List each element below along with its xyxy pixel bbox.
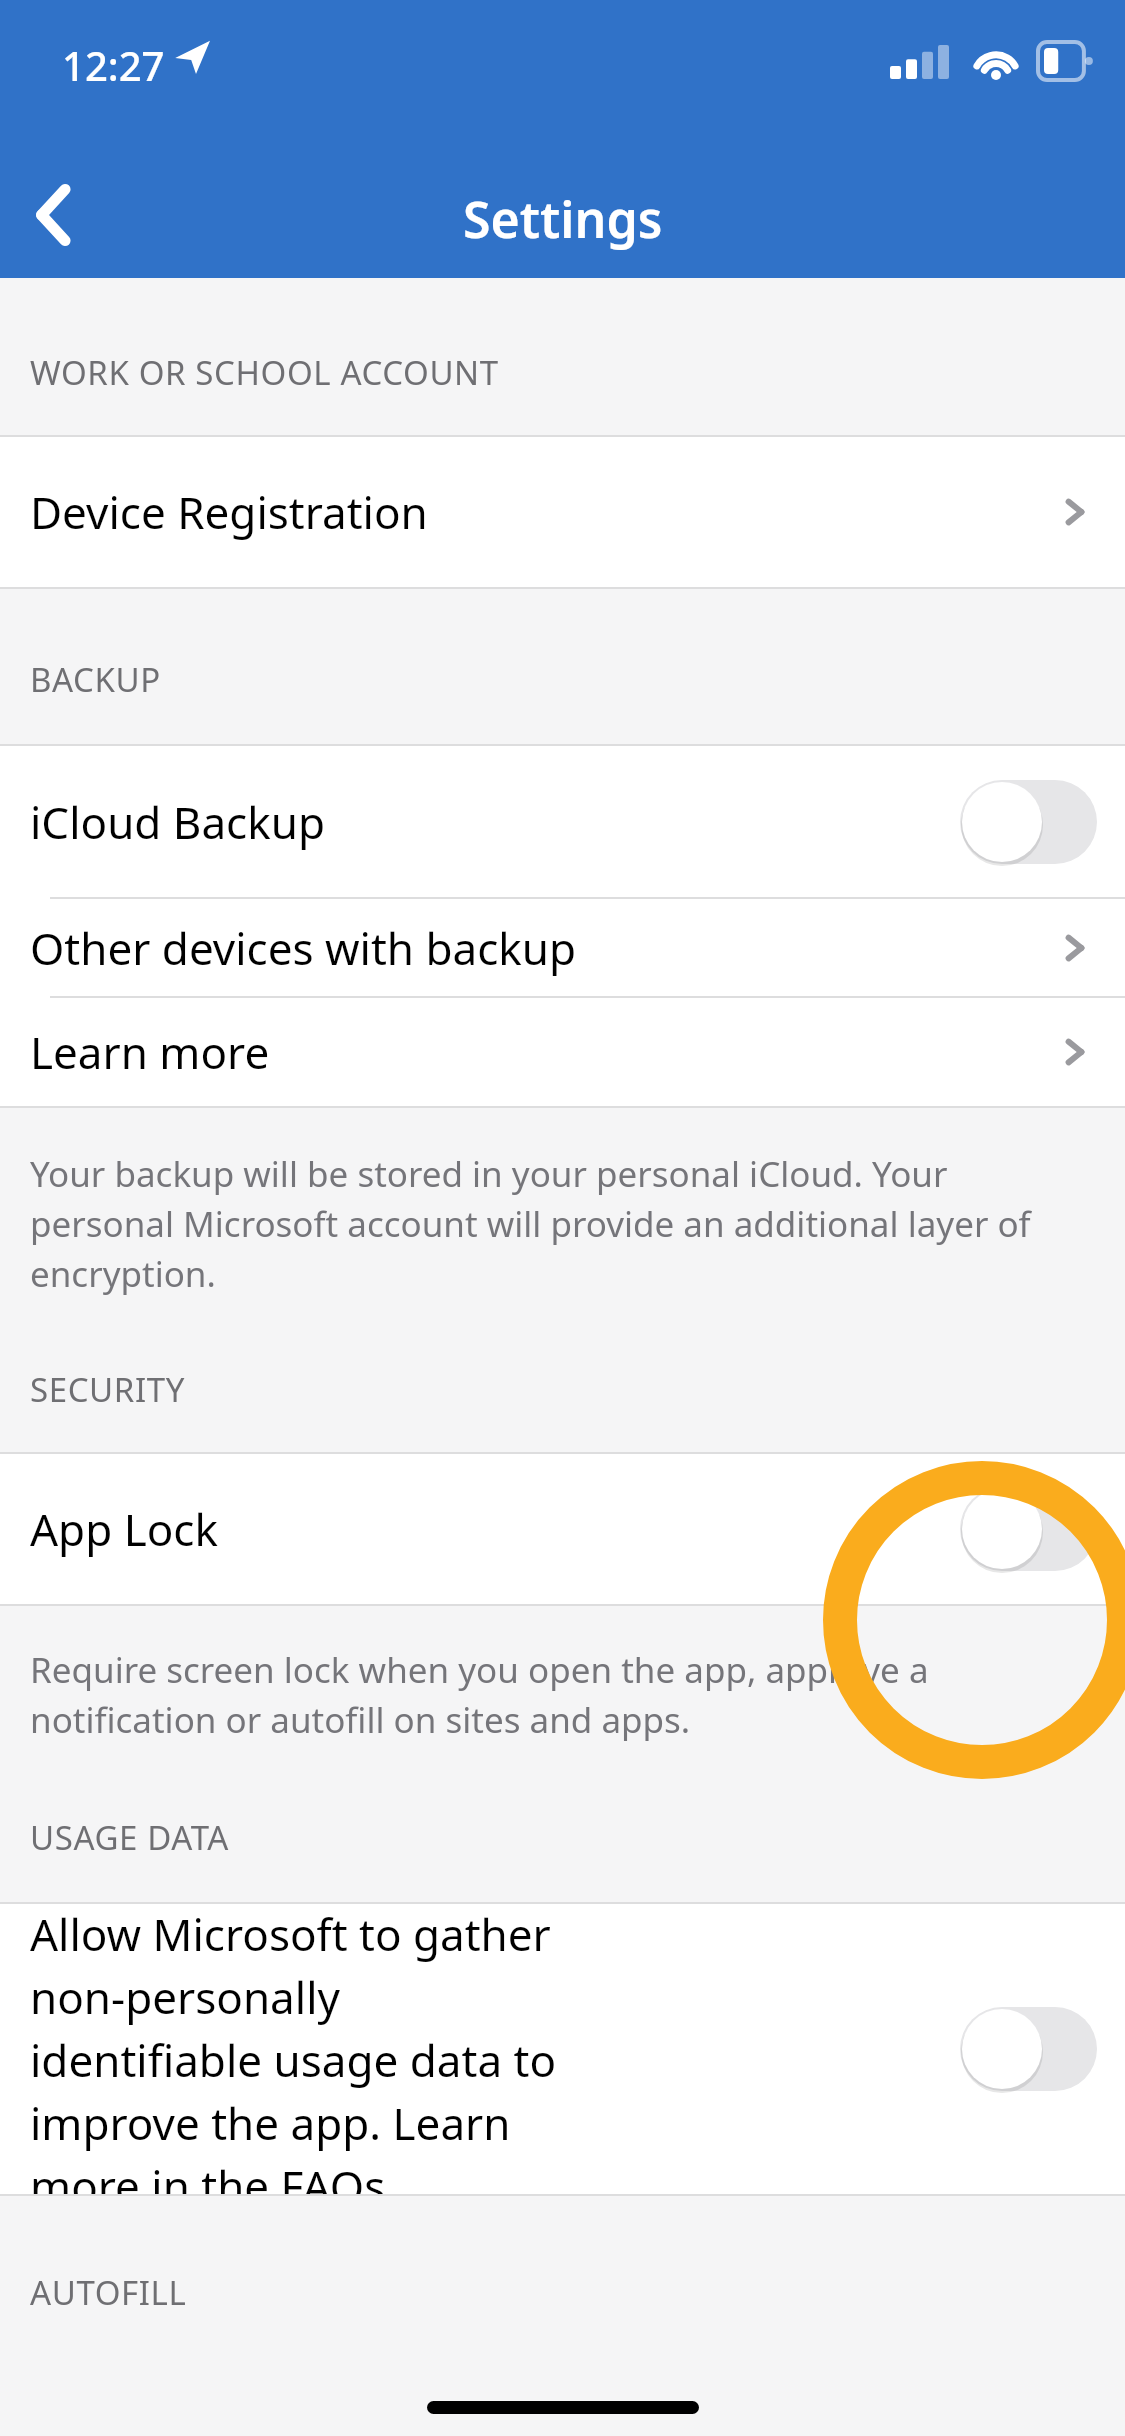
button[interactable]: Other devices with backup <box>0 899 1125 996</box>
button[interactable]: Learn more <box>0 998 1125 1106</box>
button[interactable]: iCloud Backup <box>0 746 1125 897</box>
staticText: Your backup will be stored in your perso… <box>30 1150 1085 1297</box>
staticText: Other devices with backup <box>30 918 577 978</box>
staticText: Device Registration <box>30 482 428 542</box>
staticText: USAGE DATA <box>30 1815 229 1860</box>
staticText: 12:27 <box>62 38 165 92</box>
button[interactable]: Device Registration <box>0 437 1125 587</box>
button[interactable]: App Lock <box>0 1454 1125 1604</box>
staticText: iCloud Backup <box>30 792 325 852</box>
staticText: WORK OR SCHOOL ACCOUNT <box>30 350 499 395</box>
staticText: BACKUP <box>30 657 161 702</box>
staticText: SECURITY <box>30 1367 185 1412</box>
staticText: Allow Microsoft to gather non-personally… <box>30 1904 575 2194</box>
staticText: Require screen lock when you open the ap… <box>30 1646 1085 1743</box>
staticText: App Lock <box>30 1499 218 1559</box>
staticText: Learn more <box>30 1022 270 1082</box>
button[interactable]: Back <box>10 170 100 260</box>
staticText: AUTOFILL <box>30 2270 187 2315</box>
staticText: Settings <box>463 185 663 253</box>
button[interactable]: Allow Microsoft to gather non-personally… <box>0 1904 1125 2194</box>
